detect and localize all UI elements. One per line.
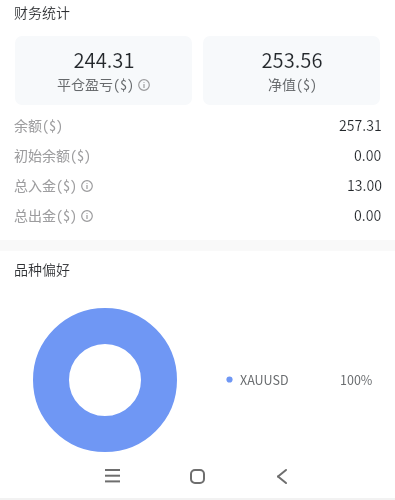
staticText: 初始余额($) bbox=[14, 145, 91, 165]
button[interactable]: 初始余额($) bbox=[0, 140, 395, 170]
staticText: 平仓盈亏($) bbox=[57, 74, 134, 94]
staticText: 0.00 bbox=[354, 145, 382, 165]
button[interactable]: 余额($) bbox=[0, 110, 395, 140]
staticText: 257.31 bbox=[339, 115, 382, 135]
staticText: 13.00 bbox=[347, 175, 382, 195]
staticText: 品种偏好 bbox=[14, 259, 70, 279]
button[interactable]: 总出金($) bbox=[0, 200, 395, 230]
staticText: 财务统计 bbox=[14, 2, 70, 22]
button[interactable]: 244.31 bbox=[15, 36, 192, 105]
button[interactable]: 总入金($) bbox=[0, 170, 395, 200]
button[interactable]: 253.56 bbox=[203, 36, 380, 105]
staticText: 253.56 bbox=[261, 45, 323, 74]
button[interactable]: Back bbox=[258, 452, 306, 500]
staticText: 总入金($) bbox=[14, 175, 77, 195]
button[interactable]: Home bbox=[173, 452, 221, 500]
staticText: 244.31 bbox=[73, 45, 135, 74]
staticText: 余额($) bbox=[14, 115, 63, 135]
button[interactable]: Recent apps bbox=[88, 452, 136, 500]
staticText: 100% bbox=[340, 370, 373, 388]
staticText: 0.00 bbox=[354, 205, 382, 225]
staticText: XAUUSD bbox=[240, 370, 289, 388]
staticText: 总出金($) bbox=[14, 205, 77, 225]
staticText: 净值($) bbox=[268, 74, 317, 94]
